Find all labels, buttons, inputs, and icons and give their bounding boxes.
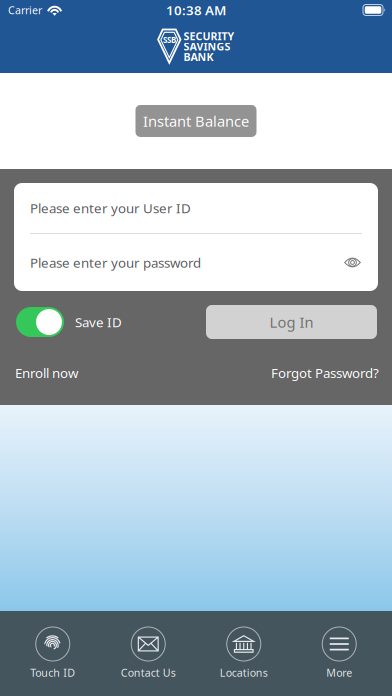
staticText: Locations — [220, 665, 268, 680]
button[interactable]: Locations — [196, 611, 291, 696]
button[interactable]: Save ID — [16, 307, 122, 337]
staticText: Touch ID — [30, 665, 75, 680]
staticText: More — [326, 665, 352, 680]
staticText: 10:38 AM — [166, 1, 226, 19]
staticText: Please enter your password — [30, 254, 201, 271]
staticText: SAVINGS — [183, 39, 230, 54]
staticText: Instant Balance — [143, 111, 249, 131]
button[interactable]: Contact Us — [100, 611, 196, 696]
staticText: BANK — [183, 50, 213, 64]
staticText: SECURITY — [183, 29, 234, 43]
button[interactable]: Log In — [206, 305, 377, 339]
staticText: Carrier — [8, 3, 42, 17]
staticText: Please enter your User ID — [30, 199, 191, 217]
button[interactable]: Touch ID — [5, 611, 100, 696]
staticText: Forgot Password? — [271, 364, 379, 382]
staticText: SSB — [163, 34, 176, 45]
staticText: Contact Us — [121, 665, 176, 680]
button[interactable]: Instant Balance — [135, 105, 256, 137]
button[interactable]: Forgot Password? — [271, 364, 379, 382]
staticText: Save ID — [75, 313, 122, 331]
staticText: Log In — [269, 312, 313, 332]
button[interactable]: More — [291, 611, 387, 696]
button[interactable]: Enroll now — [15, 364, 78, 382]
staticText: Enroll now — [15, 364, 78, 382]
